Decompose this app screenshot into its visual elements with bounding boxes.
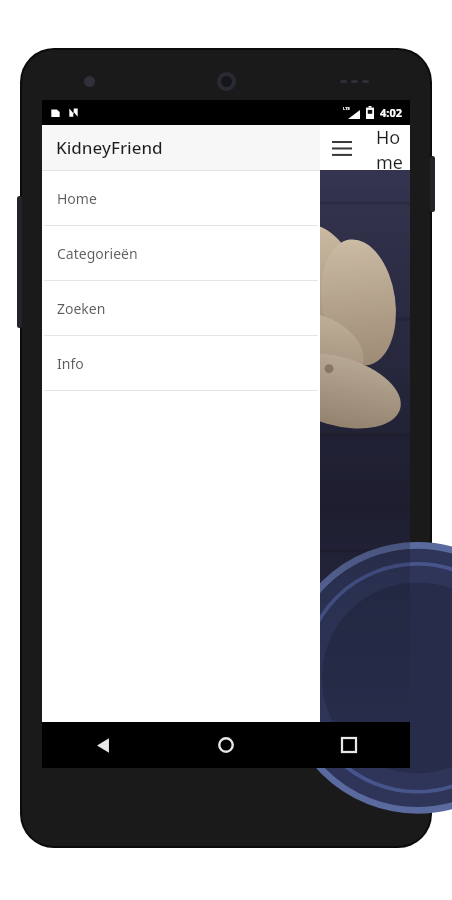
staticText: KidneyFriend [56,136,163,159]
button[interactable]: Open navigation menu [320,126,364,170]
button[interactable]: Back [42,722,164,768]
staticText: KidneyFriend [147,276,305,309]
button[interactable]: Info [42,336,320,390]
staticText: Home [376,125,410,170]
button[interactable]: Home [42,171,320,225]
staticText: Deze app is voor mensen aan de dialyse. … [138,321,314,368]
staticText: Home [57,189,97,208]
staticText: Info [57,354,84,373]
staticText: 4:02 [380,105,402,120]
staticText: LTE [343,106,350,111]
staticText: Zoeken [57,299,106,318]
button[interactable]: Recent apps [287,722,410,768]
button[interactable]: Home [164,722,287,768]
button[interactable]: KidneyFriend [42,125,320,170]
button[interactable]: Zoeken [42,281,320,335]
staticText: Categorieën [57,244,138,263]
button[interactable]: Categorieën [42,226,320,280]
